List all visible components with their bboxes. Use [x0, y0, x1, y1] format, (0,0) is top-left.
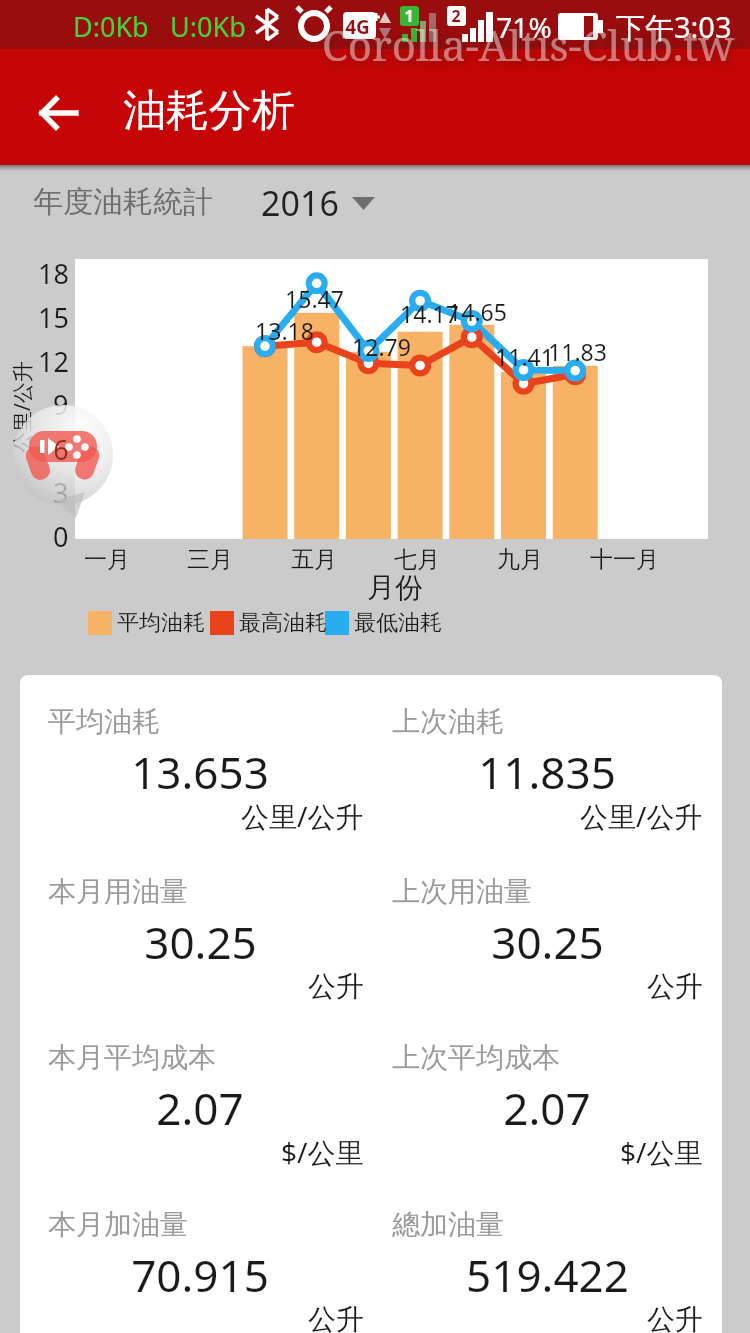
staticText: 本月用油量: [48, 874, 188, 909]
staticText: 公升: [308, 1302, 364, 1333]
staticText: 三月: [187, 545, 233, 574]
staticText: 11.83: [548, 336, 607, 367]
staticText: 公升: [647, 969, 703, 1004]
staticText: 七月: [394, 545, 440, 574]
staticText: 最低油耗: [354, 609, 442, 637]
staticText: 上次平均成本: [392, 1040, 560, 1075]
button[interactable]: [28, 85, 88, 141]
staticText: 519.422: [466, 1245, 629, 1305]
staticText: 下午3:03: [616, 7, 732, 47]
staticText: 11.835: [478, 742, 616, 802]
staticText: 公里/公升: [580, 797, 703, 835]
staticText: 總加油量: [392, 1207, 504, 1242]
staticText: 九月: [497, 545, 543, 574]
staticText: 3: [53, 474, 69, 511]
staticText: Corolla-Altis-Club.tw: [322, 16, 735, 73]
staticText: 平均油耗: [48, 704, 160, 739]
staticText: 13.653: [131, 742, 269, 802]
staticText: 公里/公升: [8, 361, 37, 453]
staticText: 本月加油量: [48, 1207, 188, 1242]
staticText: 年度油耗統計: [33, 183, 213, 221]
staticText: 15.47: [285, 283, 344, 314]
staticText: 2: [451, 5, 461, 27]
staticText: 月份: [367, 570, 423, 605]
staticText: 12.79: [352, 331, 411, 362]
staticText: 2.07: [156, 1078, 244, 1138]
staticText: 9: [53, 386, 69, 423]
staticText: 12: [38, 343, 69, 380]
staticText: 上次用油量: [392, 874, 532, 909]
staticText: U:0Kb: [170, 8, 246, 45]
staticText: 14.17: [400, 298, 459, 329]
staticText: D:0Kb: [73, 8, 149, 45]
staticText: 70.915: [131, 1245, 269, 1305]
staticText: 4G: [345, 14, 370, 40]
staticText: 五月: [291, 545, 337, 574]
staticText: 公升: [647, 1302, 703, 1333]
button[interactable]: [15, 406, 113, 514]
staticText: 油耗分析: [123, 84, 295, 138]
staticText: 1: [404, 5, 414, 27]
staticText: 一月: [84, 545, 130, 574]
staticText: 15: [38, 299, 69, 336]
staticText: 6: [53, 430, 69, 467]
staticText: 14.65: [448, 296, 507, 327]
staticText: 公升: [308, 969, 364, 1004]
staticText: 18: [38, 255, 69, 292]
staticText: 13.18: [255, 315, 314, 346]
staticText: 71%: [496, 8, 552, 46]
staticText: 上次油耗: [392, 704, 504, 739]
button[interactable]: [20, 175, 420, 231]
staticText: 6: [53, 431, 69, 468]
staticText: 公里/公升: [241, 797, 364, 835]
staticText: 2.07: [503, 1078, 591, 1138]
staticText: 0: [53, 518, 69, 555]
staticText: 最高油耗: [239, 609, 327, 637]
staticText: 2016: [261, 180, 339, 226]
staticText: $/公里: [620, 1133, 703, 1171]
staticText: 30.25: [144, 912, 257, 972]
staticText: 十一月: [590, 545, 659, 574]
staticText: 11.41: [495, 341, 554, 372]
staticText: 本月平均成本: [48, 1040, 216, 1075]
staticText: 平均油耗: [117, 609, 205, 637]
staticText: $/公里: [281, 1133, 364, 1171]
staticText: 30.25: [491, 912, 604, 972]
